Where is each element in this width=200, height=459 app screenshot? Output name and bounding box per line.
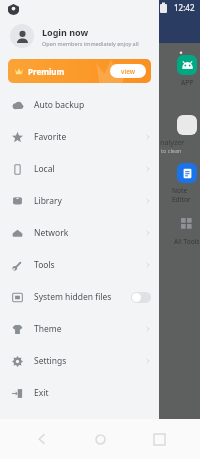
button[interactable]: Home [83, 422, 117, 456]
button[interactable]: Note Editor [172, 163, 200, 204]
button[interactable]: Settings [0, 345, 159, 377]
staticText: view [121, 67, 136, 76]
staticText: Login now [42, 26, 89, 38]
staticText: Settings [34, 355, 67, 367]
staticText: Open members immediately enjoy all privi… [42, 40, 153, 47]
button[interactable]: System hidden files [0, 281, 159, 313]
staticText: System hidden files [34, 291, 112, 303]
button[interactable]: Library [0, 185, 159, 217]
button[interactable]: Local [0, 153, 159, 185]
staticText: Library [34, 195, 62, 207]
button[interactable]: Analyzer [172, 115, 200, 135]
button[interactable]: Exit [0, 377, 159, 409]
button[interactable]: view [110, 64, 146, 78]
staticText: Auto backup [34, 99, 85, 111]
staticText: All Tools [174, 237, 200, 246]
staticText: Network [34, 227, 69, 239]
staticText: to clean [161, 147, 182, 154]
button[interactable]: Back [25, 422, 59, 456]
button[interactable]: Login now [0, 18, 159, 54]
button[interactable]: Recent apps [142, 422, 176, 456]
staticText: nalyzer [160, 138, 185, 148]
staticText: Exit [34, 387, 49, 399]
staticText: Theme [34, 323, 62, 335]
button[interactable] [131, 292, 151, 303]
button[interactable]: All Tools [172, 214, 200, 246]
staticText: Favorite [34, 131, 67, 143]
button[interactable]: Premium [8, 59, 151, 83]
button[interactable]: Tools [0, 249, 159, 281]
button[interactable]: Theme [0, 313, 159, 345]
button[interactable]: Favorite [0, 121, 159, 153]
button[interactable]: APP [172, 55, 200, 87]
staticText: Note Editor [172, 186, 200, 204]
staticText: 12:42 [174, 2, 195, 13]
staticText: Local [34, 163, 55, 175]
staticText: APP [181, 78, 194, 87]
button[interactable]: Auto backup [0, 89, 159, 121]
button[interactable]: More options [172, 47, 190, 73]
staticText: Tools [34, 259, 55, 271]
staticText: Premium [28, 66, 65, 77]
button[interactable]: Network [0, 217, 159, 249]
